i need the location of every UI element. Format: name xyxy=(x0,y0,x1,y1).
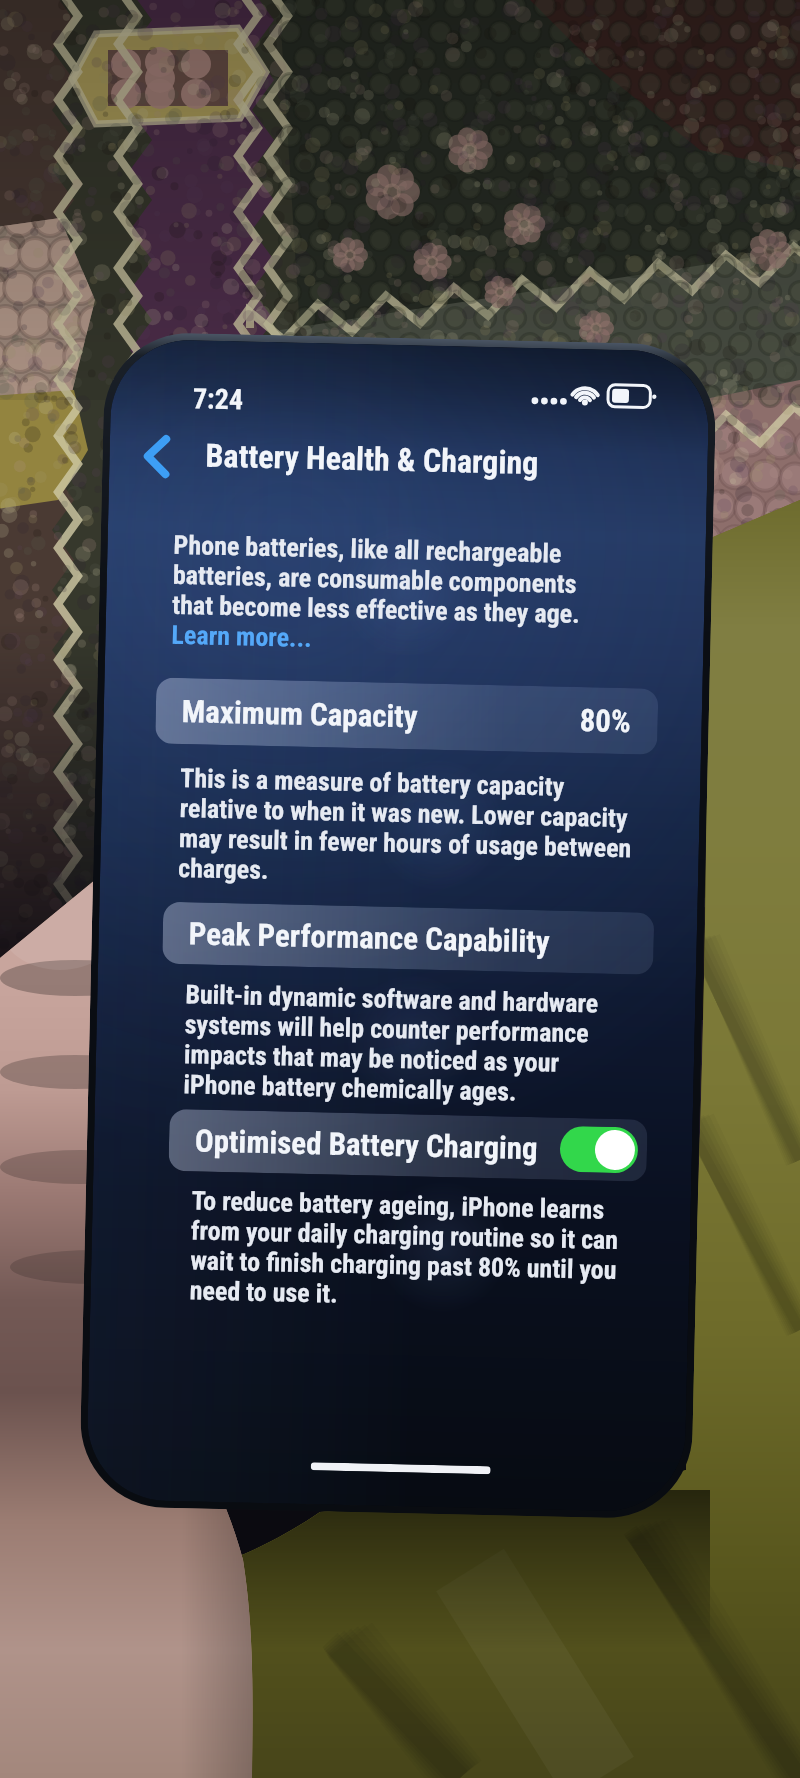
button[interactable]: Peak Performance Capability xyxy=(162,902,654,975)
staticText: Battery Health & Charging xyxy=(205,436,539,482)
button[interactable]: Optimised Battery Charging xyxy=(559,1126,638,1173)
staticText: systems will help counter performance xyxy=(184,1009,589,1048)
staticText: Maximum Capacity xyxy=(181,693,418,734)
staticText: that become less effective as they age. xyxy=(172,590,580,629)
staticText: batteries, are consumable components xyxy=(173,560,577,599)
staticText: Phone batteries, like all rechargeable xyxy=(173,530,562,569)
button[interactable]: Back xyxy=(127,427,186,486)
staticText: 80% xyxy=(579,702,632,739)
staticText: Peak Performance Capability xyxy=(188,915,550,959)
staticText: wait to finish charging past 80% until y… xyxy=(190,1245,618,1285)
staticText: Built-in dynamic software and hardware xyxy=(185,979,599,1019)
staticText: To reduce battery ageing, iPhone learns xyxy=(191,1185,605,1225)
staticText: from your daily charging routine so it c… xyxy=(191,1215,619,1255)
staticText: charges. xyxy=(178,853,270,885)
staticText: need to use it. xyxy=(189,1275,339,1309)
staticText: This is a measure of battery capacity xyxy=(180,763,564,802)
staticText: Optimised Battery Charging xyxy=(195,1122,538,1166)
staticText: may result in fewer hours of usage betwe… xyxy=(179,823,632,863)
staticText: relative to when it was new. Lower capac… xyxy=(179,793,629,833)
button[interactable]: Maximum Capacity xyxy=(155,677,658,755)
staticText: impacts that may be noticed as your xyxy=(184,1039,560,1078)
staticText: 7:24 xyxy=(192,382,244,416)
button[interactable]: Optimised Battery Charging xyxy=(168,1109,648,1182)
staticText: iPhone battery chemically ages. xyxy=(183,1069,518,1107)
button[interactable]: Learn more... xyxy=(171,620,313,653)
